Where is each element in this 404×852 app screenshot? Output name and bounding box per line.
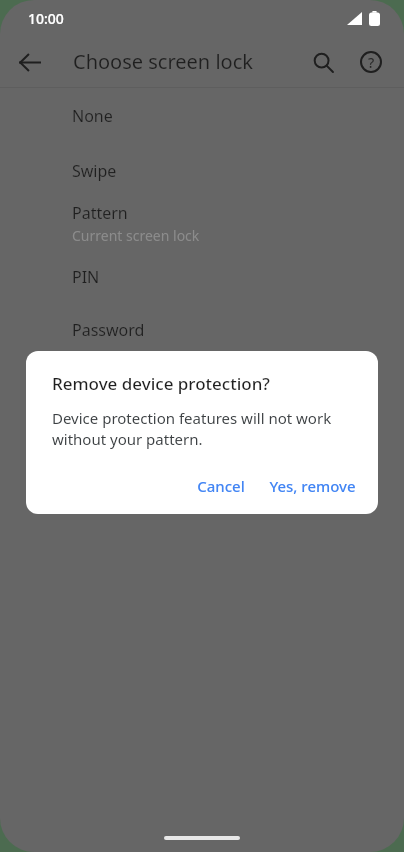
button[interactable]: Back (5, 38, 53, 86)
staticText: Swipe (72, 160, 117, 182)
staticText: Device protection features will not work… (52, 408, 356, 450)
button[interactable]: Yes, remove (261, 468, 364, 504)
button[interactable]: Help (347, 38, 395, 86)
staticText: PIN (72, 266, 100, 288)
staticText: Current screen lock (72, 226, 200, 245)
staticText: Choose screen lock (73, 48, 253, 75)
staticText: Remove device protection? (52, 372, 270, 395)
button[interactable]: Swipe (0, 144, 404, 197)
staticText: Password (72, 319, 145, 341)
staticText: 10:00 (28, 9, 64, 28)
button[interactable]: PIN (0, 250, 404, 303)
button[interactable]: None (0, 88, 404, 144)
button[interactable]: Pattern (0, 197, 404, 250)
staticText: Pattern (72, 202, 128, 224)
button[interactable]: Cancel (189, 468, 253, 504)
staticText: Yes, remove (269, 476, 356, 496)
staticText: Cancel (197, 476, 245, 496)
button[interactable]: Password (0, 303, 404, 356)
staticText: None (72, 105, 113, 127)
staticText: ? (368, 53, 375, 72)
button[interactable]: Search (299, 38, 347, 86)
